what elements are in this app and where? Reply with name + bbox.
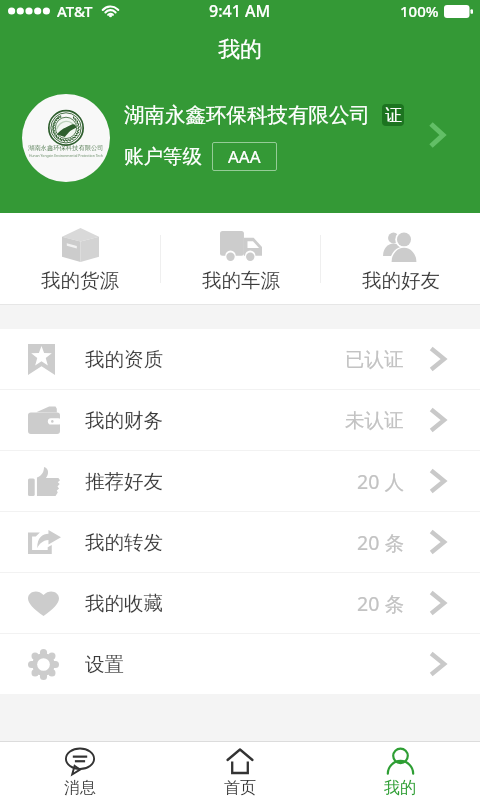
staticText: 设置 — [85, 652, 124, 677]
staticText: 消息 — [64, 778, 96, 798]
staticText: AAA — [228, 145, 261, 168]
staticText: 我的 — [218, 36, 262, 64]
button[interactable]: 我的转发 — [0, 512, 480, 572]
staticText: 我的车源 — [202, 268, 280, 293]
button[interactable]: 我的货源 — [0, 213, 160, 305]
staticText: AT&T — [57, 1, 93, 21]
button[interactable]: 首页 — [160, 748, 320, 800]
staticText: 我的财务 — [85, 408, 163, 433]
staticText: 推荐好友 — [85, 469, 163, 494]
button[interactable]: 湖南永鑫环保科技有限公司 — [0, 77, 480, 213]
staticText: 20 条 — [357, 590, 404, 617]
button[interactable]: 我的车源 — [161, 213, 320, 305]
button[interactable]: 我的收藏 — [0, 573, 480, 633]
staticText: 100% — [400, 1, 439, 21]
staticText: 湖南永鑫环保科技有限公司 — [28, 144, 104, 152]
button[interactable]: 推荐好友 — [0, 451, 480, 511]
staticText: 已认证 — [345, 347, 404, 372]
staticText: 证 — [385, 105, 402, 126]
other: 查看账户详情 — [429, 122, 445, 148]
staticText: 首页 — [224, 778, 256, 798]
staticText: 湖南永鑫环保科技有限公司 — [124, 102, 370, 128]
staticText: 未认证 — [345, 408, 404, 433]
staticText: 我的货源 — [41, 268, 119, 293]
staticText: 9:41 AM — [209, 0, 271, 22]
button[interactable]: 我的 — [320, 748, 480, 800]
staticText: Hunan Yongxin Environmental Protection T… — [29, 153, 103, 158]
button[interactable]: 设置 — [0, 634, 480, 694]
staticText: 我的收藏 — [85, 591, 163, 616]
staticText: 我的转发 — [85, 530, 163, 555]
staticText: 账户等级 — [124, 144, 202, 169]
button[interactable]: 我的财务 — [0, 390, 480, 450]
staticText: 20 条 — [357, 529, 404, 556]
staticText: 我的好友 — [362, 268, 440, 293]
button[interactable]: 我的好友 — [321, 213, 480, 305]
staticText: 20 人 — [357, 468, 404, 495]
button[interactable]: 我的资质 — [0, 329, 480, 389]
staticText: 我的 — [384, 778, 416, 798]
staticText: 我的资质 — [85, 347, 163, 372]
button[interactable]: 消息 — [0, 748, 160, 800]
